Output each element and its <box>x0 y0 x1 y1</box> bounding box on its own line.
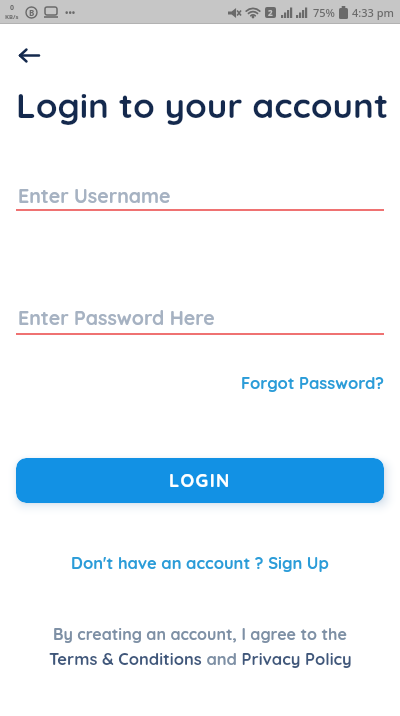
staticText: Enter Password Here <box>18 305 215 329</box>
button[interactable]: Don't have an account ? Sign Up <box>71 552 329 573</box>
staticText: Enter Username <box>18 183 171 207</box>
staticText: 2 <box>268 7 273 18</box>
staticText: Terms & Conditions and Privacy Policy <box>49 648 352 669</box>
staticText: B <box>29 7 35 18</box>
button[interactable] <box>10 41 48 69</box>
staticText: KB/s <box>5 13 19 21</box>
button[interactable]: LOGIN <box>16 458 384 503</box>
staticText: LOGIN <box>169 469 231 492</box>
staticText: ••• <box>65 6 76 18</box>
staticText: 0 <box>10 3 15 13</box>
staticText: Login to your account <box>16 83 389 127</box>
button[interactable]: Forgot Password? <box>241 372 385 393</box>
staticText: 75% <box>313 5 335 20</box>
staticText: By creating an account, I agree to the <box>53 624 347 644</box>
staticText: 4:33 pm <box>352 5 394 20</box>
